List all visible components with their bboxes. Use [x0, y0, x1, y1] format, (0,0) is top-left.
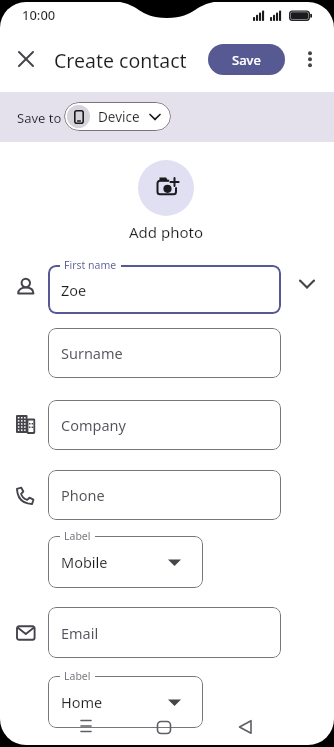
staticText: Phone — [61, 485, 105, 505]
staticText: First name — [64, 258, 117, 272]
button[interactable] — [298, 47, 322, 71]
button[interactable]: Company — [48, 400, 281, 450]
staticText: Label — [64, 669, 91, 683]
staticText: Company — [61, 415, 126, 435]
button[interactable] — [150, 712, 178, 740]
staticText: Save to — [17, 109, 62, 127]
button[interactable]: Mobile — [48, 536, 203, 588]
button[interactable] — [294, 274, 320, 300]
button[interactable]: Home — [48, 676, 203, 728]
button[interactable] — [72, 712, 100, 740]
staticText: Mobile — [61, 552, 108, 572]
staticText: Email — [61, 623, 99, 643]
button[interactable] — [138, 160, 194, 216]
button[interactable]: Zoe — [48, 265, 281, 314]
button[interactable]: Save — [208, 44, 285, 75]
staticText: Add photo — [129, 222, 203, 241]
staticText: Zoe — [61, 280, 87, 300]
button[interactable] — [12, 45, 40, 73]
staticText: Surname — [61, 343, 123, 363]
button[interactable] — [231, 712, 259, 740]
button[interactable]: Email — [48, 607, 281, 658]
staticText: Create contact — [54, 47, 187, 74]
staticText: Home — [61, 692, 103, 712]
button[interactable]: Phone — [48, 470, 281, 520]
staticText: Save — [232, 51, 261, 69]
button[interactable]: Device — [64, 102, 171, 131]
staticText: Label — [64, 529, 91, 543]
staticText: 10:00 — [22, 6, 56, 24]
staticText: Device — [98, 108, 140, 126]
button[interactable]: Surname — [48, 328, 281, 378]
